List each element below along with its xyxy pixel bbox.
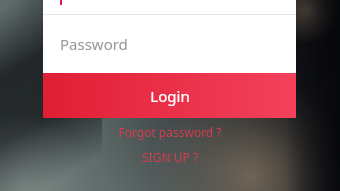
staticText: Password: [60, 34, 128, 54]
button[interactable]: SIGN UP ?: [142, 146, 198, 167]
staticText: Forgot password ?: [118, 124, 222, 140]
staticText: Login: [150, 86, 190, 106]
button[interactable]: Password: [43, 15, 296, 73]
button[interactable]: Forgot password ?: [118, 121, 222, 142]
staticText: SIGN UP ?: [142, 149, 198, 165]
button[interactable]: Login: [43, 73, 296, 118]
